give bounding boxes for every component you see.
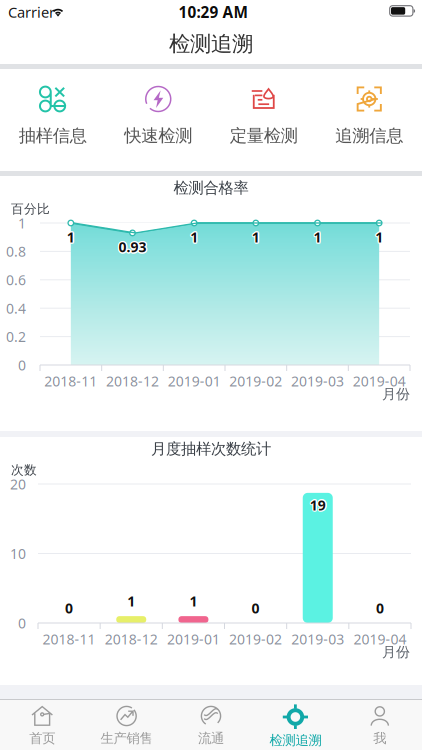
staticText: 0.93 bbox=[119, 238, 147, 257]
staticText: 1 bbox=[191, 591, 199, 611]
staticText: 2019-02 bbox=[229, 371, 282, 391]
staticText: 10:29 AM bbox=[178, 2, 247, 22]
staticText: 1 bbox=[191, 226, 199, 246]
staticText: 月份 bbox=[382, 643, 410, 661]
staticText: 百分比 bbox=[11, 201, 50, 217]
staticText: 1 bbox=[374, 226, 382, 246]
staticText: 1 bbox=[312, 227, 320, 247]
staticText: 0 bbox=[376, 600, 384, 619]
staticText: 19 bbox=[310, 495, 326, 514]
staticText: 1 bbox=[67, 227, 75, 247]
staticText: 0 bbox=[375, 599, 383, 618]
staticText: 1 bbox=[190, 226, 198, 245]
staticText: 1 bbox=[68, 228, 76, 247]
staticText: 0 bbox=[376, 598, 384, 618]
staticText: 1 bbox=[65, 227, 73, 247]
staticText: 0 bbox=[377, 599, 385, 618]
staticText: 19 bbox=[311, 496, 327, 515]
staticText: 1 bbox=[67, 229, 75, 248]
staticText: 0 bbox=[253, 598, 261, 618]
button[interactable]: 抽样信息 bbox=[0, 69, 105, 171]
staticText: 0 bbox=[250, 598, 258, 618]
staticText: 0 bbox=[252, 600, 260, 619]
staticText: 1 bbox=[315, 227, 323, 247]
staticText: 0.93 bbox=[118, 237, 146, 256]
staticText: 1 bbox=[376, 226, 384, 246]
staticText: 1 bbox=[190, 592, 198, 612]
staticText: 月份 bbox=[382, 385, 410, 403]
staticText: 0.8 bbox=[6, 242, 26, 261]
staticText: 1 bbox=[191, 227, 199, 247]
staticText: 1 bbox=[313, 229, 321, 248]
staticText: 19 bbox=[311, 495, 327, 514]
staticText: 2018-12 bbox=[106, 371, 159, 391]
staticText: 我 bbox=[373, 730, 386, 746]
staticText: 0.6 bbox=[6, 270, 26, 289]
staticText: 0 bbox=[66, 598, 74, 618]
staticText: 1 bbox=[253, 226, 261, 246]
staticText: 1 bbox=[376, 227, 384, 247]
staticText: 1 bbox=[251, 226, 259, 246]
staticText: 1 bbox=[252, 229, 260, 248]
staticText: 1 bbox=[188, 592, 196, 612]
staticText: 0.93 bbox=[118, 236, 146, 255]
staticText: 2018-12 bbox=[105, 629, 158, 649]
staticText: 月度抽样次数统计 bbox=[151, 439, 271, 459]
staticText: 0.2 bbox=[6, 327, 26, 346]
button[interactable]: 流通 bbox=[169, 700, 253, 750]
button[interactable]: 生产销售 bbox=[84, 700, 169, 750]
staticText: 1 bbox=[188, 591, 196, 610]
staticText: 1 bbox=[253, 228, 261, 247]
staticText: 19 bbox=[308, 495, 324, 514]
staticText: 0.93 bbox=[118, 239, 146, 258]
staticText: 1 bbox=[189, 227, 197, 247]
staticText: 0.93 bbox=[117, 237, 145, 256]
staticText: 抽样信息 bbox=[19, 125, 87, 146]
staticText: 1 bbox=[374, 228, 382, 247]
staticText: 1 bbox=[191, 228, 199, 247]
staticText: 1 bbox=[313, 226, 321, 246]
button[interactable]: 首页 bbox=[0, 700, 84, 750]
staticText: 1 bbox=[375, 227, 383, 247]
button[interactable]: 快速检测 bbox=[105, 69, 211, 171]
staticText: 追溯信息 bbox=[335, 125, 403, 146]
staticText: 0 bbox=[66, 597, 74, 617]
staticText: 0.93 bbox=[117, 236, 145, 256]
button[interactable]: 定量检测 bbox=[211, 69, 316, 171]
staticText: 1 bbox=[253, 227, 261, 247]
staticText: 1 bbox=[126, 591, 134, 611]
staticText: 1 bbox=[313, 226, 321, 245]
staticText: 0 bbox=[377, 598, 385, 618]
staticText: 1 bbox=[189, 226, 197, 246]
button[interactable]: 追溯信息 bbox=[316, 69, 422, 171]
staticText: 0 bbox=[251, 599, 259, 618]
staticText: 20 bbox=[10, 474, 26, 494]
staticText: 1 bbox=[251, 228, 259, 247]
button[interactable]: 检测追溯 bbox=[253, 700, 338, 750]
staticText: 0 bbox=[252, 597, 260, 616]
staticText: 1 bbox=[126, 591, 134, 610]
staticText: 1 bbox=[18, 213, 26, 233]
staticText: 2019-03 bbox=[291, 629, 344, 649]
staticText: 1 bbox=[127, 593, 135, 612]
staticText: 0 bbox=[252, 598, 260, 618]
staticText: 1 bbox=[375, 226, 383, 245]
staticText: 1 bbox=[127, 590, 135, 609]
staticText: 1 bbox=[127, 591, 135, 611]
staticText: 0 bbox=[375, 598, 383, 618]
staticText: 1 bbox=[375, 229, 383, 248]
button[interactable]: 我 bbox=[338, 700, 422, 750]
staticText: 2019-03 bbox=[291, 371, 344, 391]
staticText: 0 bbox=[64, 599, 72, 618]
staticText: 19 bbox=[309, 494, 325, 514]
staticText: 19 bbox=[311, 494, 327, 514]
staticText: 2019-01 bbox=[167, 629, 220, 649]
staticText: 1 bbox=[66, 228, 74, 247]
staticText: 0 bbox=[18, 613, 26, 633]
staticText: 1 bbox=[314, 226, 322, 246]
staticText: 0 bbox=[252, 597, 260, 617]
staticText: 0 bbox=[252, 599, 260, 618]
staticText: 0 bbox=[65, 597, 73, 616]
staticText: 0 bbox=[66, 599, 74, 618]
staticText: 19 bbox=[309, 496, 325, 515]
